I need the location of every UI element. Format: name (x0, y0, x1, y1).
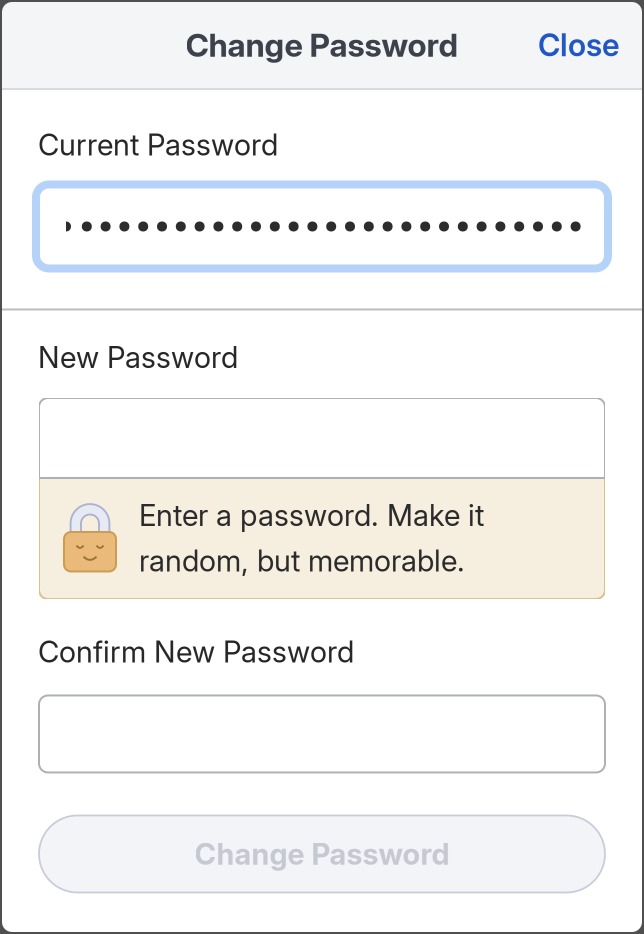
button[interactable]: Change Password (39, 815, 605, 892)
staticText: Current Password (38, 127, 278, 162)
staticText: Close (538, 26, 620, 63)
staticText: Enter a password. Make it (139, 497, 484, 533)
staticText: Change Password (185, 26, 458, 64)
staticText: New Password (38, 339, 238, 375)
staticText: Change Password (194, 836, 449, 872)
button[interactable]: Close (527, 14, 631, 75)
staticText: Confirm New Password (38, 634, 354, 669)
staticText: random, but memorable. (139, 543, 465, 578)
